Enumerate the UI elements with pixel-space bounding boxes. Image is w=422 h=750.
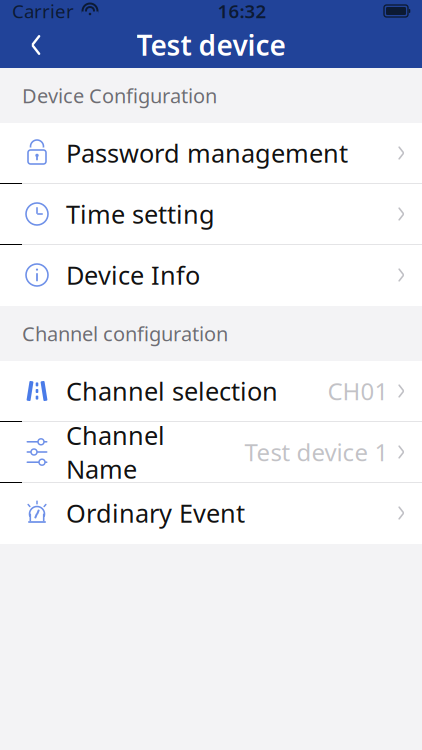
staticText: Device Configuration [22, 82, 217, 109]
button[interactable]: Ordinary Event [0, 483, 422, 544]
staticText: Ordinary Event [66, 496, 245, 530]
button[interactable]: Channel Name [0, 422, 422, 483]
staticText: Test device [136, 26, 285, 64]
staticText: Channel selection [66, 374, 278, 408]
staticText: Channel Name [66, 418, 165, 486]
staticText: 16:32 [217, 0, 266, 23]
staticText: Password management [66, 136, 348, 170]
button[interactable]: Time setting [0, 184, 422, 245]
button[interactable]: Password management [0, 123, 422, 184]
staticText: Channel configuration [22, 320, 228, 347]
button[interactable]: Back [14, 23, 58, 67]
staticText: CH01 [327, 375, 388, 407]
staticText: Time setting [66, 197, 215, 231]
button[interactable]: Device Info [0, 245, 422, 306]
staticText: Carrier [12, 0, 74, 23]
staticText: Device Info [66, 258, 200, 292]
button[interactable]: Channel selection [0, 361, 422, 422]
staticText: Test device 1 [244, 436, 388, 468]
